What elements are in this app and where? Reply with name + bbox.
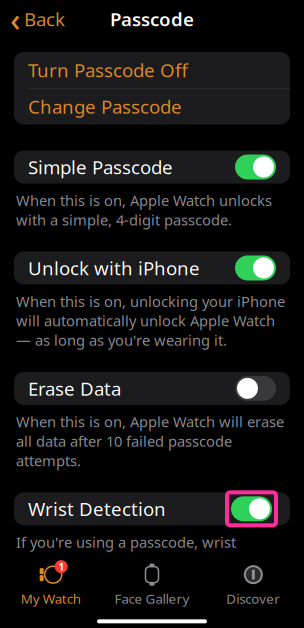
button[interactable]: Face Gallery: [101, 559, 203, 611]
staticText: When this is on, Apple Watch unlocks wit…: [16, 190, 272, 229]
staticText: ‹: [10, 0, 20, 40]
button[interactable]: 1: [0, 559, 101, 611]
staticText: Passcode: [110, 7, 194, 31]
button[interactable]: Simple Passcode: [14, 150, 290, 183]
staticText: If you're using a passcode, wrist detect…: [16, 532, 287, 610]
button[interactable]: Discover: [203, 559, 304, 611]
staticText: My Watch: [21, 590, 81, 607]
staticText: Erase Data: [28, 376, 121, 401]
button[interactable]: Erase Data: [14, 372, 290, 405]
staticText: When this is on, unlocking your iPhone w…: [16, 291, 285, 350]
button[interactable]: Turn Passcode Off: [14, 52, 290, 88]
staticText: Turn Passcode Off: [28, 58, 188, 82]
button[interactable]: Change Passcode: [14, 88, 290, 124]
staticText: Wrist Detection: [28, 496, 166, 521]
button[interactable]: Wrist Detection: [14, 492, 290, 525]
staticText: Face Gallery: [114, 590, 189, 607]
staticText: 1: [58, 560, 64, 574]
staticText: Unlock with iPhone: [28, 256, 200, 280]
button[interactable]: Unlock with iPhone: [14, 251, 290, 284]
staticText: Change Passcode: [28, 94, 182, 119]
staticText: Discover: [226, 590, 280, 607]
staticText: Back: [24, 7, 65, 31]
staticText: Simple Passcode: [28, 155, 173, 179]
button[interactable]: ‹: [0, 2, 75, 36]
staticText: When this is on, Apple Watch will erase …: [16, 412, 284, 470]
